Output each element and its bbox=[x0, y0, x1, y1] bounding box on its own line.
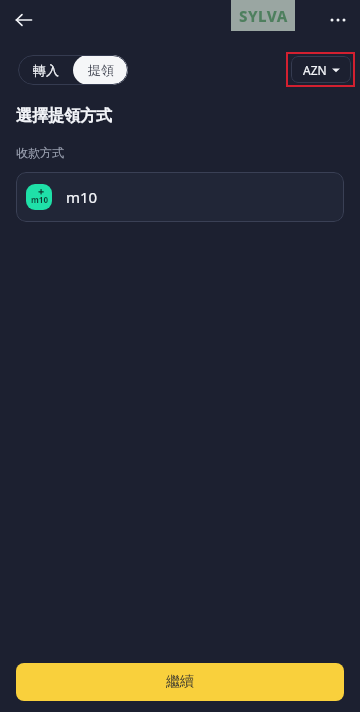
button[interactable]: Back bbox=[8, 4, 40, 36]
staticText: 提領 bbox=[88, 62, 114, 78]
staticText: SYLVA bbox=[239, 6, 288, 26]
staticText: m10 bbox=[66, 187, 98, 207]
staticText: 選擇提領方式 bbox=[16, 106, 112, 126]
button[interactable]: 提領 bbox=[73, 55, 128, 85]
button[interactable]: m10 bbox=[16, 172, 344, 222]
staticText: AZN bbox=[303, 62, 327, 78]
staticText: 繼續 bbox=[166, 673, 194, 691]
staticText: m10 bbox=[31, 194, 48, 205]
button[interactable]: AZN bbox=[291, 56, 351, 83]
staticText: 收款方式 bbox=[16, 145, 64, 160]
button[interactable]: 轉入 bbox=[18, 55, 73, 85]
staticText: 轉入 bbox=[33, 62, 59, 78]
button[interactable]: 繼續 bbox=[16, 663, 344, 701]
button[interactable]: More options bbox=[322, 4, 354, 36]
